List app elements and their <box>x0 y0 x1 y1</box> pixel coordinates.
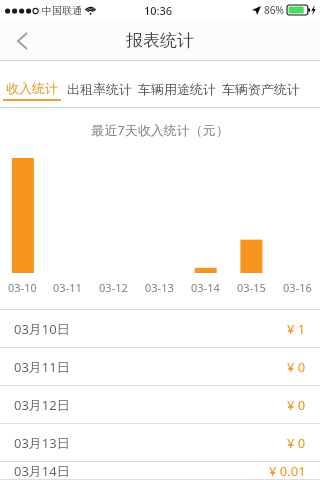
staticText: ¥ 0 <box>287 396 306 414</box>
staticText: 03月13日 <box>14 434 70 452</box>
button[interactable]: 03月10日 <box>0 310 320 348</box>
button[interactable]: 03月13日 <box>0 424 320 462</box>
staticText: ¥ 0.01 <box>269 462 306 480</box>
button[interactable]: 收入统计 <box>3 61 61 107</box>
staticText: ¥ 1 <box>287 320 306 338</box>
staticText: 03月10日 <box>14 320 70 338</box>
staticText: 03-11 <box>53 280 82 295</box>
staticText: 03-12 <box>99 280 128 295</box>
staticText: 03-10 <box>8 280 37 295</box>
staticText: 03-14 <box>191 280 220 295</box>
staticText: 最近7天收入统计（元） <box>91 121 229 139</box>
staticText: 03-16 <box>283 280 312 295</box>
button[interactable]: 车辆用途统计 <box>138 61 216 107</box>
staticText: 10:36 <box>144 3 173 18</box>
staticText: 报表统计 <box>126 30 194 51</box>
staticText: 86% <box>264 3 284 17</box>
button[interactable]: 03月12日 <box>0 386 320 424</box>
staticText: 出租率统计 <box>67 81 132 97</box>
button[interactable]: Back <box>0 20 44 61</box>
staticText: 03-15 <box>237 280 266 295</box>
staticText: 收入统计 <box>6 80 58 96</box>
staticText: 03月12日 <box>14 396 70 414</box>
button[interactable]: 车辆资产统计 <box>222 61 300 107</box>
staticText: ¥ 0 <box>287 358 306 376</box>
button[interactable]: 03月14日 <box>0 462 320 480</box>
staticText: ¥ 0 <box>287 434 306 452</box>
staticText: 中国联通 <box>42 4 82 17</box>
button[interactable]: 出租率统计 <box>67 61 132 107</box>
button[interactable]: 03月11日 <box>0 348 320 386</box>
staticText: 车辆资产统计 <box>222 81 300 97</box>
staticText: 03-13 <box>145 280 174 295</box>
staticText: 03月14日 <box>14 462 70 480</box>
staticText: 03月11日 <box>14 358 70 376</box>
staticText: 车辆用途统计 <box>138 81 216 97</box>
